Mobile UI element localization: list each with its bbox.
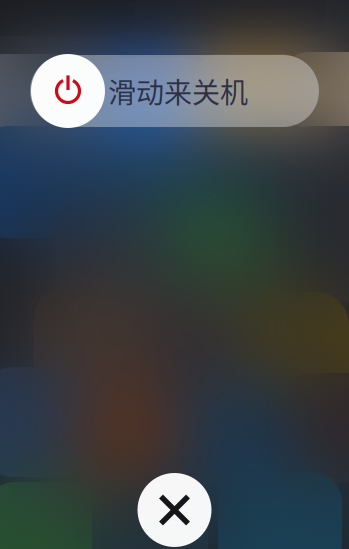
button[interactable]: 滑动来关机 — [30, 54, 319, 128]
staticText: 滑动来关机 — [108, 71, 248, 111]
button[interactable]: Cancel — [137, 473, 211, 547]
